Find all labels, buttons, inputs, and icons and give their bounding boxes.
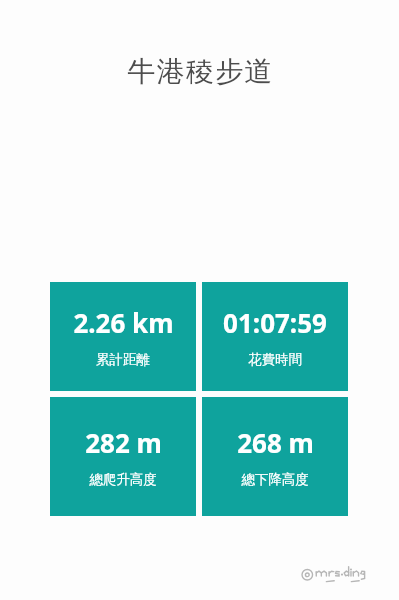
staticText: 2.26 km <box>73 305 174 340</box>
staticText: 牛港稜步道 <box>127 54 273 89</box>
staticText: 總爬升高度 <box>89 471 157 488</box>
staticText: 282 m <box>85 425 162 460</box>
button[interactable]: 282 m <box>50 397 196 516</box>
staticText: 花費時間 <box>248 351 302 368</box>
other: Watermark mrs ding <box>303 564 381 584</box>
staticText: 總下降高度 <box>241 471 309 488</box>
button[interactable]: 2.26 km <box>50 282 196 391</box>
staticText: 268 m <box>237 425 314 460</box>
button[interactable]: 01:07:59 <box>202 282 348 391</box>
button[interactable]: 268 m <box>202 397 348 516</box>
staticText: 01:07:59 <box>223 305 327 340</box>
staticText: 累計距離 <box>96 351 150 368</box>
